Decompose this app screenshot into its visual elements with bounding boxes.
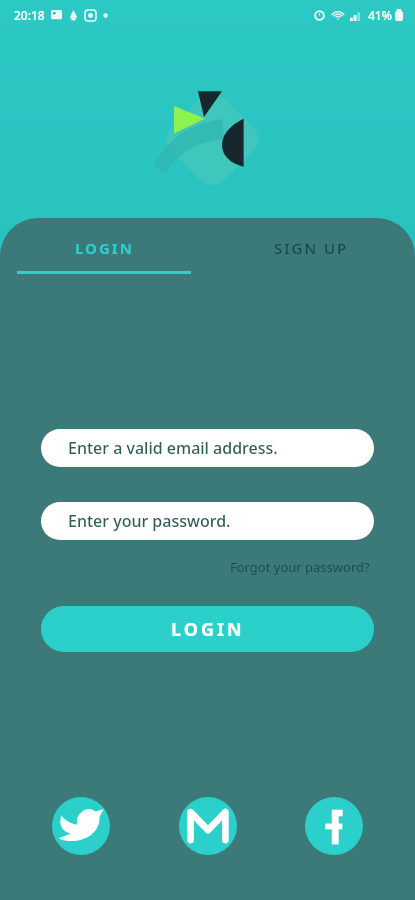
button[interactable]: Gmail	[179, 797, 237, 855]
staticText: 20:18	[14, 7, 45, 23]
button[interactable]: SIGN UP	[207, 218, 415, 284]
staticText: LOGIN	[75, 238, 134, 258]
button[interactable]: Twitter	[52, 797, 110, 855]
staticText: Enter a valid email address.	[68, 437, 278, 459]
staticText: SIGN UP	[274, 238, 349, 258]
staticText: LOGIN	[171, 617, 245, 642]
staticText: 41%	[368, 7, 392, 23]
staticText: Forgot your password?	[230, 558, 370, 576]
staticText: Enter your password.	[68, 510, 231, 532]
button[interactable]: LOGIN	[41, 606, 374, 652]
button[interactable]: Forgot your password?	[226, 554, 374, 580]
button[interactable]: Facebook	[305, 797, 363, 855]
button[interactable]: LOGIN	[0, 218, 207, 284]
button[interactable]: Enter a valid email address.	[41, 429, 374, 467]
button[interactable]: Enter your password.	[41, 502, 374, 540]
